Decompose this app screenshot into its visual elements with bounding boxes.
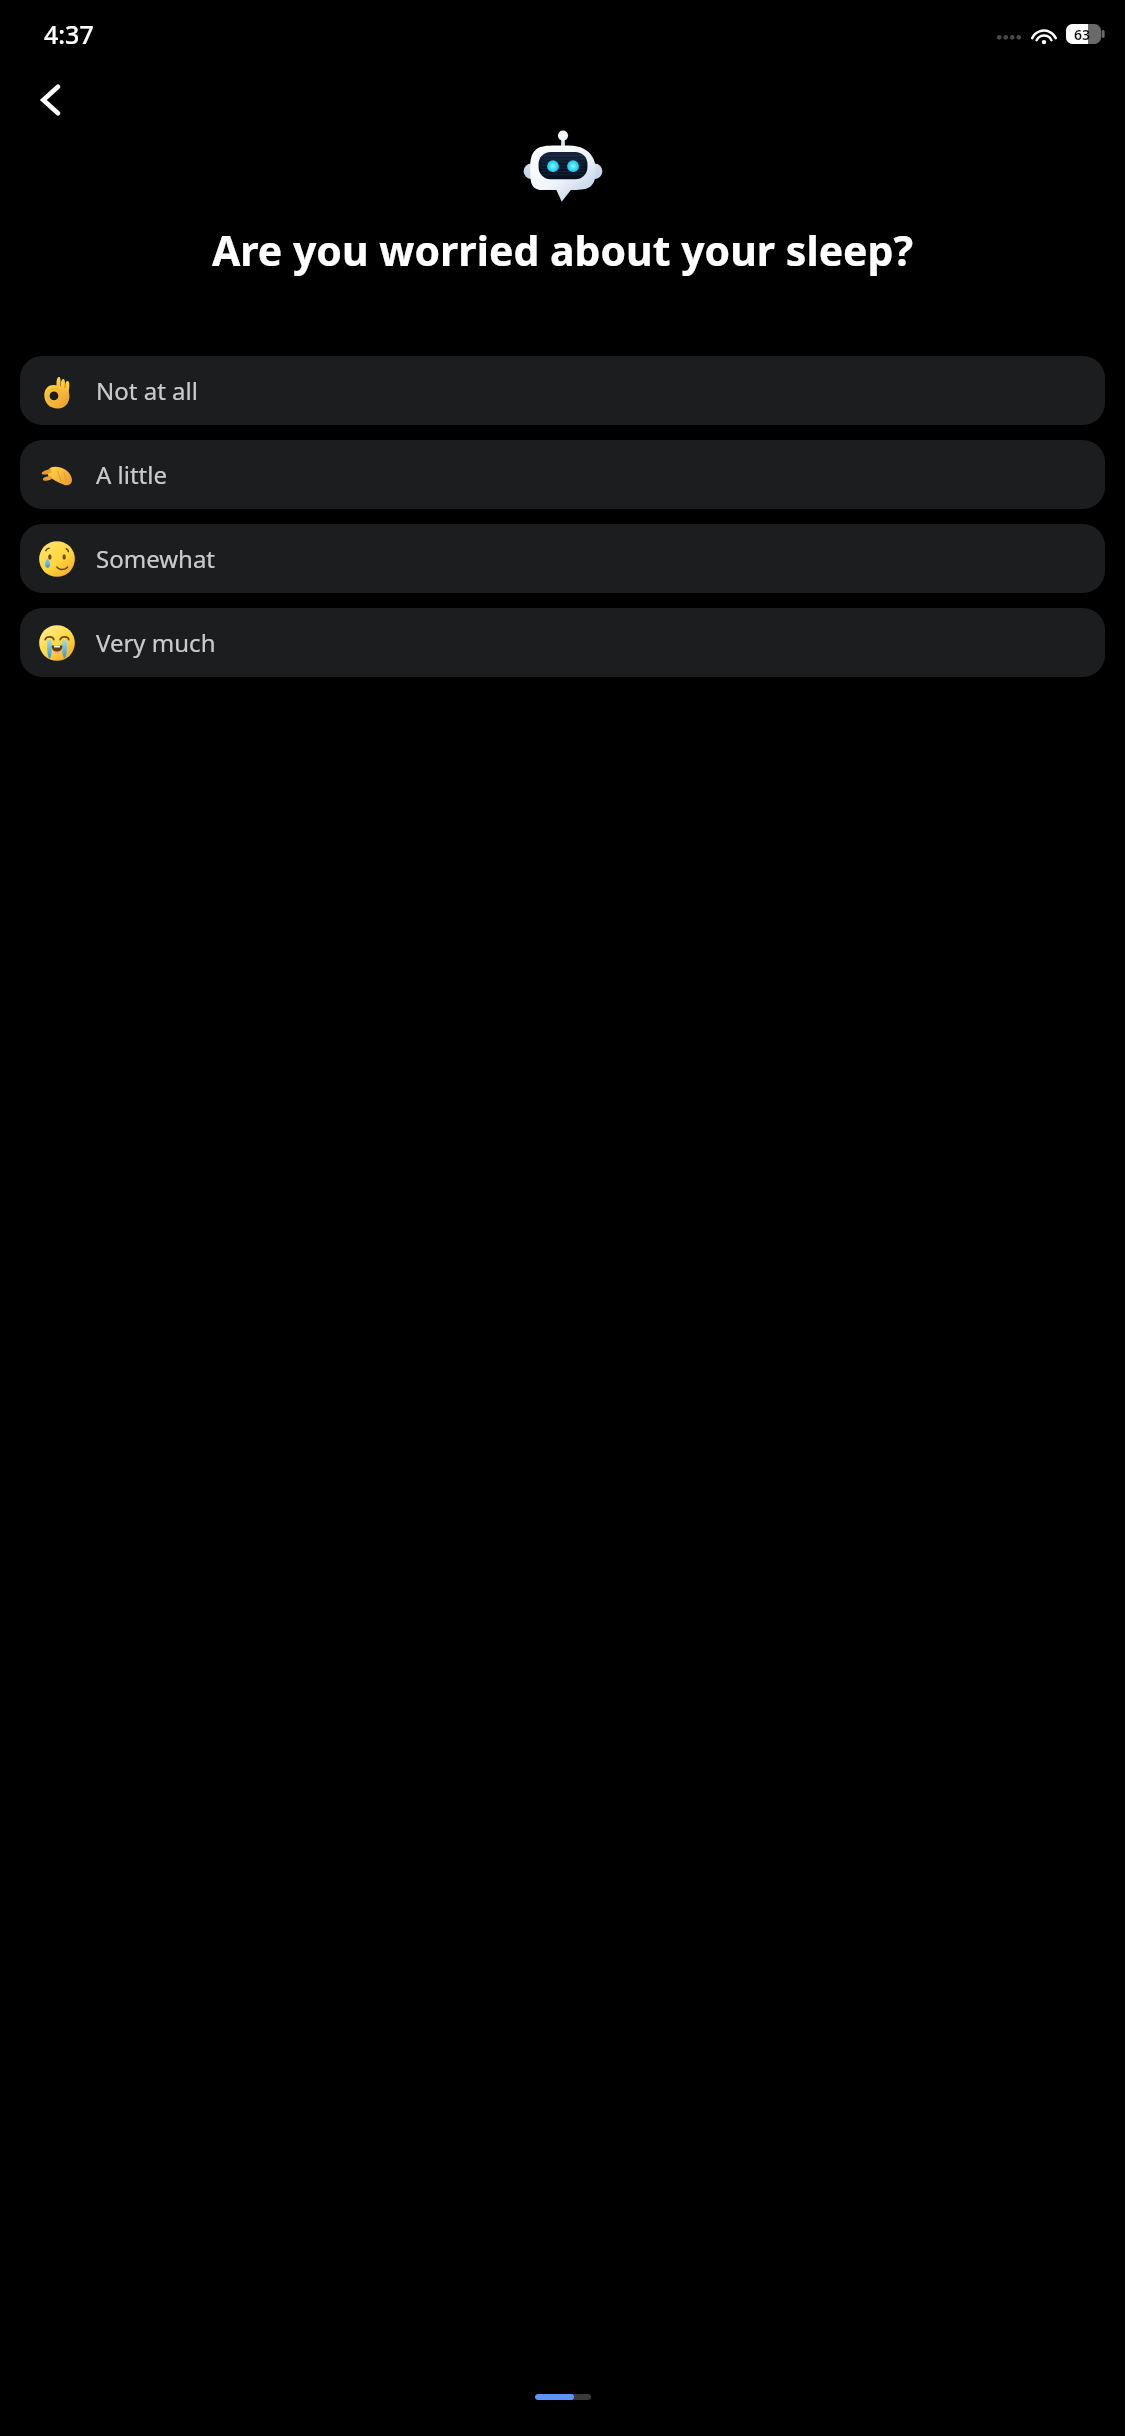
staticText: 4:37 <box>44 17 94 51</box>
staticText: Somewhat <box>96 542 216 575</box>
button[interactable]: A little <box>20 440 1105 509</box>
button[interactable]: Very much <box>20 608 1105 677</box>
staticText: Are you worried about your sleep? <box>16 222 1109 278</box>
button[interactable]: Not at all <box>20 356 1105 425</box>
staticText: Very much <box>96 626 216 659</box>
staticText: A little <box>96 458 168 491</box>
button[interactable]: Somewhat <box>20 524 1105 593</box>
staticText: Not at all <box>96 374 198 407</box>
staticText: 63 <box>1074 25 1091 44</box>
button[interactable]: Back <box>24 72 80 128</box>
